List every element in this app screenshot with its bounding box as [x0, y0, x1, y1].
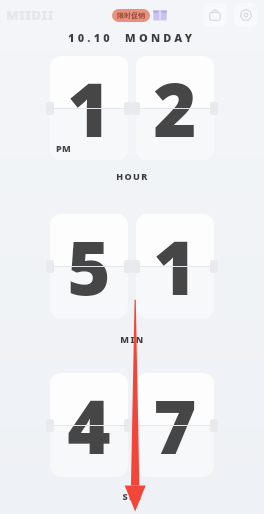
staticText: SEC — [122, 490, 143, 502]
staticText: MIIDII — [6, 6, 54, 24]
staticText: 4 — [67, 375, 111, 476]
button[interactable]: 5 — [50, 214, 128, 318]
button[interactable]: 2 — [136, 56, 214, 160]
staticText: 7 — [153, 375, 197, 476]
button[interactable]: 1 — [50, 56, 128, 160]
button[interactable]: 7 — [136, 373, 214, 477]
button[interactable]: Shopping bag — [203, 3, 227, 27]
button[interactable]: 1 — [136, 214, 214, 318]
staticText: 限时促销 — [117, 11, 145, 20]
staticText: MIN — [120, 333, 145, 345]
staticText: HOUR — [116, 170, 149, 182]
button[interactable]: Settings — [234, 3, 258, 27]
button[interactable]: 4 — [50, 373, 128, 477]
staticText: 1 — [67, 58, 111, 159]
staticText: 5 — [67, 216, 111, 317]
staticText: PM — [56, 142, 72, 154]
staticText: 2 — [153, 58, 197, 159]
button[interactable]: 限时促销 — [112, 7, 168, 23]
staticText: 10.10 MONDAY — [68, 30, 196, 45]
staticText: 1 — [153, 216, 197, 317]
